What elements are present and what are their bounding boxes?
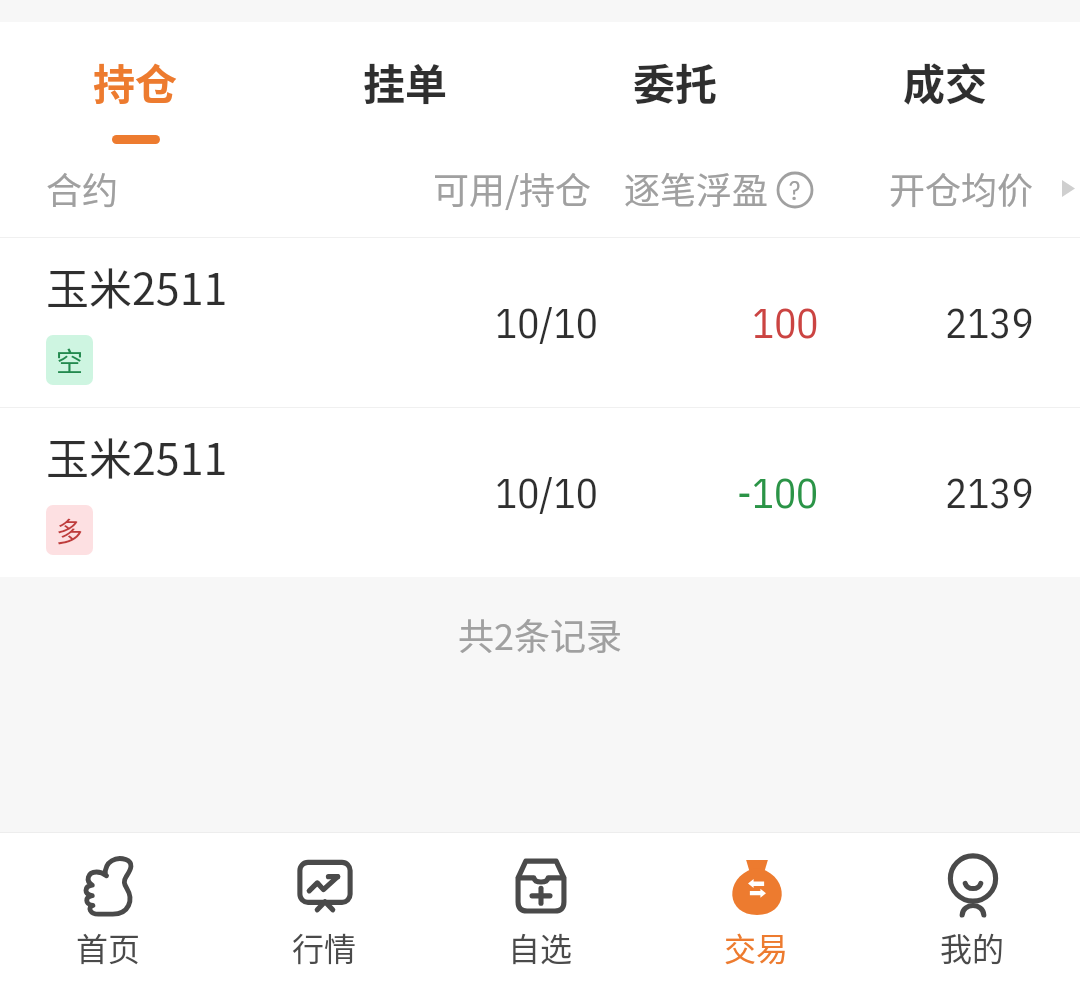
staticText: 持仓 bbox=[93, 51, 178, 112]
staticText: 10/10 bbox=[495, 296, 598, 349]
staticText: 2139 bbox=[945, 466, 1034, 519]
staticText: 首页 bbox=[76, 924, 141, 970]
button[interactable]: 帮助说明 bbox=[776, 171, 814, 209]
button[interactable]: 交易 bbox=[648, 833, 864, 970]
staticText: 逐笔浮盈 bbox=[624, 162, 769, 214]
button[interactable]: 玉米2511 bbox=[0, 238, 1080, 407]
staticText: 交易 bbox=[724, 924, 789, 970]
staticText: 委托 bbox=[633, 51, 718, 112]
staticText: 开仓均价 bbox=[889, 162, 1034, 214]
button[interactable]: 委托 bbox=[540, 22, 810, 135]
button[interactable]: 成交 bbox=[810, 22, 1080, 135]
staticText: 共2条记录 bbox=[458, 608, 622, 660]
staticText: 自选 bbox=[508, 924, 573, 970]
button[interactable]: 首页 bbox=[0, 833, 216, 970]
staticText: 成交 bbox=[903, 51, 988, 112]
button[interactable]: 行情 bbox=[216, 833, 432, 970]
staticText: 多 bbox=[56, 511, 83, 550]
staticText: 行情 bbox=[292, 924, 357, 970]
button[interactable]: 挂单 bbox=[270, 22, 540, 135]
staticText: 我的 bbox=[940, 924, 1005, 970]
staticText: 10/10 bbox=[495, 466, 598, 519]
staticText: 玉米2511 bbox=[46, 425, 228, 487]
staticText: 玉米2511 bbox=[46, 255, 228, 317]
staticText: 可用/持仓 bbox=[433, 162, 592, 214]
button[interactable]: 自选 bbox=[432, 833, 648, 970]
staticText: 2139 bbox=[945, 296, 1034, 349]
button[interactable]: 持仓 bbox=[0, 22, 270, 144]
button[interactable]: 更多列 bbox=[1062, 180, 1075, 197]
staticText: 100 bbox=[752, 296, 819, 349]
staticText: 空 bbox=[56, 341, 83, 380]
staticText: 挂单 bbox=[363, 51, 448, 112]
button[interactable]: 我的 bbox=[864, 833, 1080, 970]
button[interactable]: 玉米2511 bbox=[0, 408, 1080, 577]
staticText: -100 bbox=[737, 466, 819, 519]
staticText: 合约 bbox=[46, 162, 119, 214]
staticText: ? bbox=[789, 173, 801, 207]
